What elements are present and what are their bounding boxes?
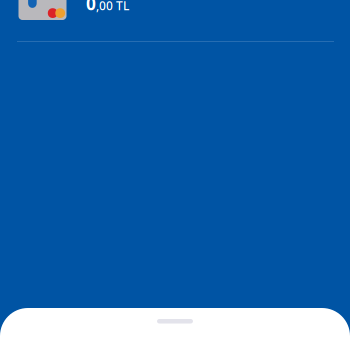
button[interactable]: Kart bakiyesi 0,00 TL	[0, 0, 350, 42]
staticText: 0,00 TL	[86, 0, 129, 15]
